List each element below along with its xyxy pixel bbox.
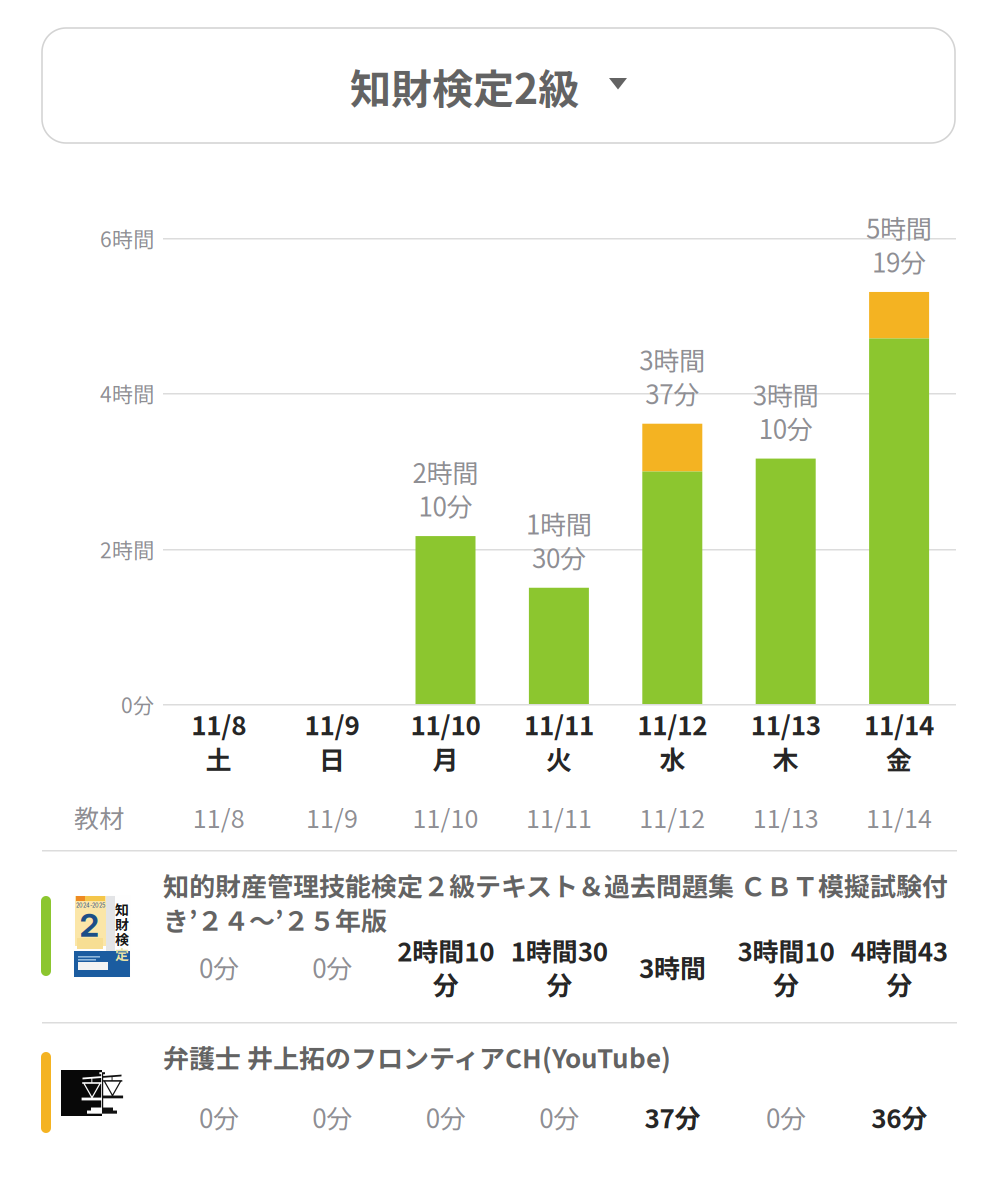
button[interactable]: 弁護士 井上拓のフロンティアCH(YouTube) <box>0 1022 996 1157</box>
staticText: 11/14 <box>866 799 932 835</box>
staticText: 1時間30分 <box>510 931 607 1003</box>
staticText: 36分 <box>871 1098 927 1136</box>
staticText: 2時間 <box>100 534 154 564</box>
staticText: 0分 <box>199 948 239 986</box>
staticText: 11/11 <box>524 705 594 743</box>
staticText: 3時間10分 <box>737 931 834 1003</box>
staticText: 財 <box>115 914 129 934</box>
staticText: 土 <box>206 740 232 777</box>
staticText: 4時間 <box>100 378 154 408</box>
button[interactable]: 2024-2025 <box>0 850 996 1022</box>
staticText: 月 <box>432 740 458 777</box>
staticText: 3時間 <box>639 340 705 378</box>
staticText: 2時間10分 <box>397 931 494 1003</box>
staticText: 金 <box>886 740 912 777</box>
staticText: 2 <box>79 906 99 944</box>
staticText: 6時間 <box>100 223 154 253</box>
staticText: 3時間 <box>753 375 819 413</box>
staticText: 知 <box>115 899 129 919</box>
staticText: 11/8 <box>193 799 245 835</box>
staticText: 2024-2025 <box>76 902 105 909</box>
staticText: 11/9 <box>306 799 358 835</box>
staticText: 4時間43分 <box>851 931 948 1003</box>
staticText: 11/10 <box>410 705 480 743</box>
staticText: 11/8 <box>191 705 246 743</box>
staticText: 37分 <box>644 1098 700 1136</box>
staticText: 11/13 <box>753 799 819 835</box>
staticText: 2時間 <box>412 453 478 490</box>
staticText: 検 <box>115 929 129 949</box>
staticText: 10分 <box>759 409 813 446</box>
staticText: 0分 <box>199 1098 239 1136</box>
staticText: 1時間 <box>526 504 592 542</box>
staticText: 0分 <box>539 1098 579 1136</box>
staticText: 0分 <box>766 1098 806 1136</box>
staticText: 定 <box>115 944 129 964</box>
staticText: 10分 <box>418 486 472 524</box>
staticText: 0分 <box>121 689 154 719</box>
staticText: 0分 <box>312 948 352 986</box>
staticText: 30分 <box>532 538 586 576</box>
staticText: 11/12 <box>639 799 705 835</box>
staticText: 11/10 <box>412 799 478 835</box>
staticText: 5時間 <box>866 209 932 246</box>
staticText: 19分 <box>872 242 926 280</box>
staticText: 11/9 <box>305 705 360 743</box>
staticText: 11/11 <box>526 799 592 835</box>
staticText: 0分 <box>425 1098 465 1136</box>
staticText: 教材 <box>74 799 124 835</box>
staticText: 3時間 <box>639 948 706 986</box>
button[interactable]: 知財検定2級 <box>42 28 955 143</box>
staticText: 火 <box>546 740 572 777</box>
staticText: 11/13 <box>751 705 821 743</box>
staticText: 知的財産管理技能検定２級テキスト＆過去問題集 ＣＢＴ模擬試験付き’２４～’２５年… <box>163 866 948 938</box>
staticText: 日 <box>319 740 345 777</box>
staticText: 水 <box>659 740 685 777</box>
staticText: 11/12 <box>637 705 707 743</box>
staticText: 弁護士 井上拓のフロンティアCH(YouTube) <box>163 1038 671 1076</box>
staticText: 37分 <box>645 374 699 412</box>
staticText: 知財検定2級 <box>350 56 579 116</box>
staticText: 11/14 <box>864 705 934 743</box>
staticText: 木 <box>773 740 799 777</box>
staticText: 0分 <box>312 1098 352 1136</box>
